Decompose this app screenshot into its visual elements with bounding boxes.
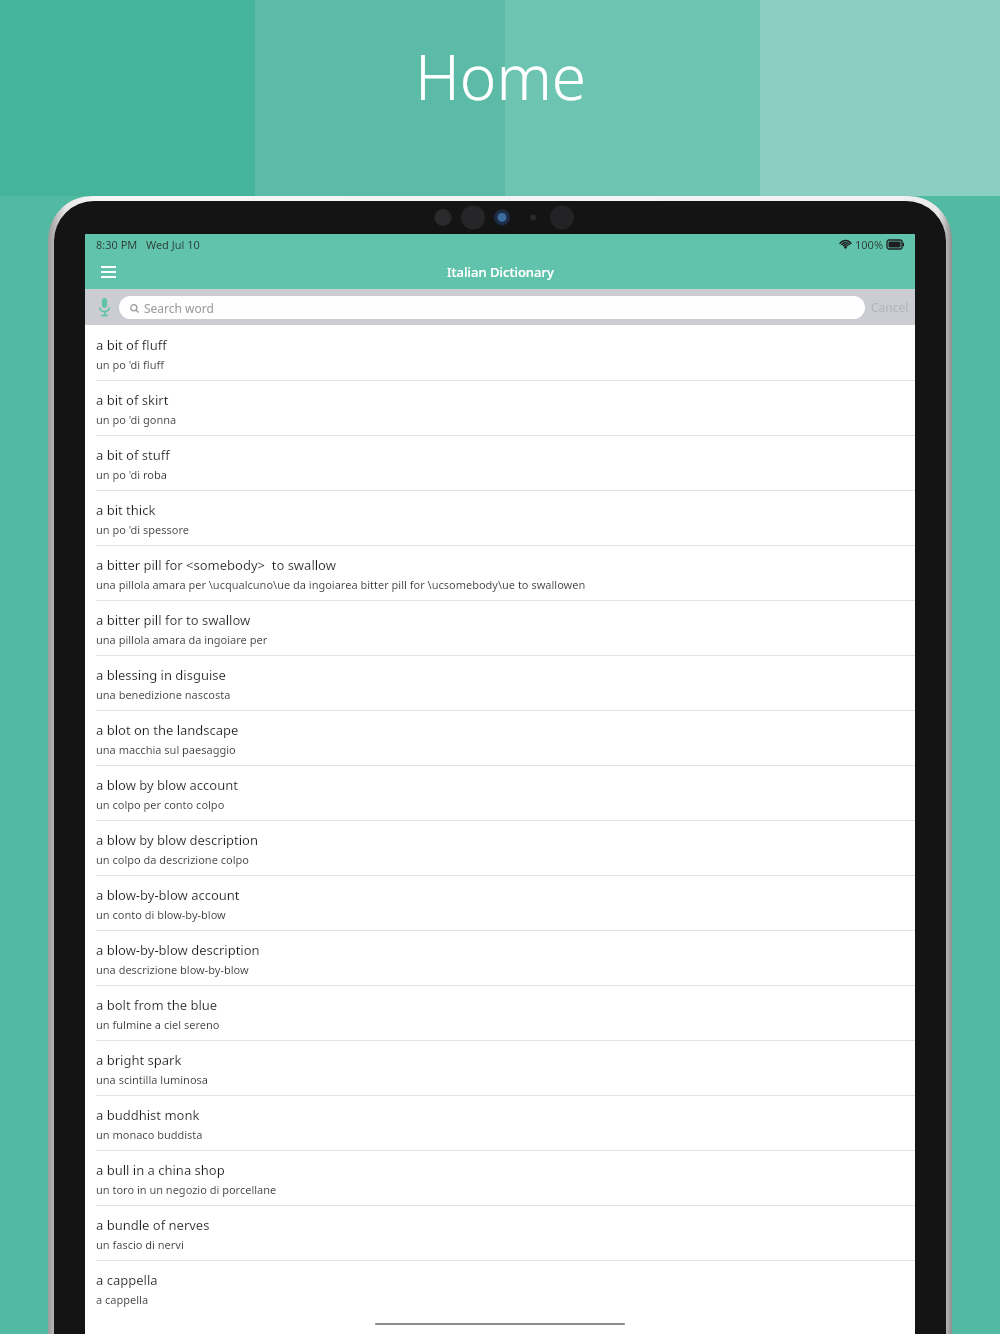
staticText: un po 'di roba: [96, 467, 167, 482]
button[interactable]: a bitter pill for to swallow: [85, 600, 915, 655]
staticText: una benedizione nascosta: [96, 687, 231, 702]
staticText: a bull in a china shop: [96, 1161, 225, 1179]
button[interactable]: a bolt from the blue: [85, 985, 915, 1040]
staticText: a blessing in disguise: [96, 666, 226, 684]
staticText: un fascio di nervi: [96, 1237, 184, 1252]
staticText: a bundle of nerves: [96, 1216, 210, 1234]
button[interactable]: a bit of fluff: [85, 325, 915, 380]
button[interactable]: a bit of stuff: [85, 435, 915, 490]
staticText: a bit of skirt: [96, 391, 169, 409]
staticText: Cancel: [871, 299, 909, 315]
staticText: un conto di blow-by-blow: [96, 907, 226, 922]
button[interactable]: Cancel: [871, 299, 909, 315]
staticText: a blow by blow description: [96, 831, 258, 849]
staticText: 100%: [855, 237, 884, 252]
staticText: a blow-by-blow account: [96, 886, 240, 904]
staticText: a blow by blow account: [96, 776, 238, 794]
staticText: a blow-by-blow description: [96, 941, 260, 959]
staticText: a blot on the landscape: [96, 721, 239, 739]
staticText: un po 'di spessore: [96, 522, 189, 537]
button[interactable]: a bull in a china shop: [85, 1150, 915, 1205]
staticText: a bright spark: [96, 1051, 182, 1069]
staticText: Search word: [144, 300, 214, 316]
button[interactable]: Open navigation menu: [93, 257, 123, 287]
staticText: a bitter pill for to swallow: [96, 611, 251, 629]
staticText: 8:30 PM Wed Jul 10: [96, 237, 200, 252]
staticText: a bit thick: [96, 501, 156, 519]
staticText: una pillola amara per \ucqualcuno\ue da …: [96, 577, 586, 592]
button[interactable]: a blow-by-blow account: [85, 875, 915, 930]
staticText: un colpo da descrizione colpo: [96, 852, 249, 867]
staticText: a cappella: [96, 1271, 158, 1289]
button[interactable]: a bundle of nerves: [85, 1205, 915, 1260]
staticText: Home: [415, 34, 586, 118]
staticText: un po 'di gonna: [96, 412, 177, 427]
button[interactable]: a bright spark: [85, 1040, 915, 1095]
button[interactable]: a bitter pill for <somebody> to swallow: [85, 545, 915, 600]
button[interactable]: a blow by blow account: [85, 765, 915, 820]
button[interactable]: a blot on the landscape: [85, 710, 915, 765]
staticText: una macchia sul paesaggio: [96, 742, 236, 757]
staticText: una scintilla luminosa: [96, 1072, 208, 1087]
staticText: un monaco buddista: [96, 1127, 203, 1142]
button[interactable]: Search word: [119, 296, 865, 319]
staticText: a bit of fluff: [96, 336, 167, 354]
button[interactable]: a bit thick: [85, 490, 915, 545]
staticText: un colpo per conto colpo: [96, 797, 225, 812]
button[interactable]: a blow-by-blow description: [85, 930, 915, 985]
staticText: a bolt from the blue: [96, 996, 218, 1014]
staticText: a buddhist monk: [96, 1106, 200, 1124]
staticText: a bitter pill for <somebody> to swallow: [96, 556, 336, 574]
button[interactable]: a blessing in disguise: [85, 655, 915, 710]
button[interactable]: a buddhist monk: [85, 1095, 915, 1150]
staticText: una pillola amara da ingoiare per: [96, 632, 268, 647]
staticText: a bit of stuff: [96, 446, 170, 464]
button[interactable]: a blow by blow description: [85, 820, 915, 875]
staticText: a cappella: [96, 1292, 149, 1307]
button[interactable]: a bit of skirt: [85, 380, 915, 435]
staticText: una descrizione blow-by-blow: [96, 962, 249, 977]
staticText: un po 'di fluff: [96, 357, 165, 372]
staticText: un toro in un negozio di porcellane: [96, 1182, 277, 1197]
staticText: Italian Dictionary: [447, 263, 554, 281]
staticText: un fulmine a ciel sereno: [96, 1017, 220, 1032]
button[interactable]: Voice search: [91, 294, 117, 320]
button[interactable]: a cappella: [85, 1260, 915, 1315]
